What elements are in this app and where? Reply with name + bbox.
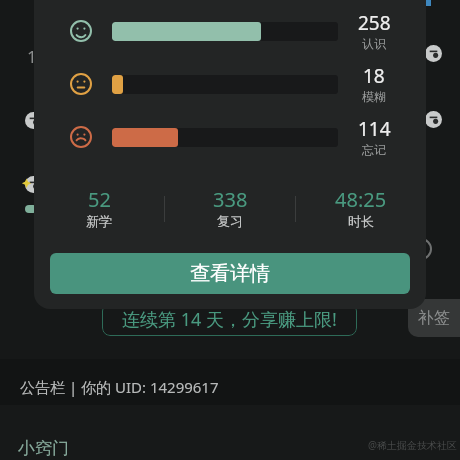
staticText: 48:25: [335, 186, 387, 213]
staticText: 114: [358, 116, 391, 142]
staticText: 公告栏 | 你的 UID: 14299617: [20, 377, 219, 397]
staticText: 查看详情: [190, 261, 270, 286]
staticText: 认识: [362, 36, 386, 51]
staticText: 52: [88, 186, 111, 213]
staticText: 1: [27, 45, 37, 68]
staticText: 新学: [86, 213, 112, 229]
button[interactable]: 查看详情: [50, 253, 410, 294]
staticText: @稀土掘金技术社区: [368, 438, 457, 452]
staticText: 忘记: [362, 142, 386, 157]
staticText: 模糊: [362, 89, 386, 104]
staticText: 18: [363, 63, 385, 89]
staticText: 连续第 14 天，分享赚上限!: [122, 307, 337, 332]
button[interactable]: 连续第 14 天，分享赚上限!: [102, 303, 357, 336]
staticText: 小窍门: [18, 438, 69, 459]
staticText: 338: [213, 186, 248, 213]
button[interactable]: 公告栏 | 你的 UID: 14299617: [0, 359, 460, 405]
staticText: 时长: [348, 213, 374, 229]
staticText: 258: [358, 10, 391, 36]
staticText: 复习: [217, 213, 243, 229]
staticText: 补签: [418, 308, 450, 328]
button[interactable]: 补签: [408, 299, 460, 337]
